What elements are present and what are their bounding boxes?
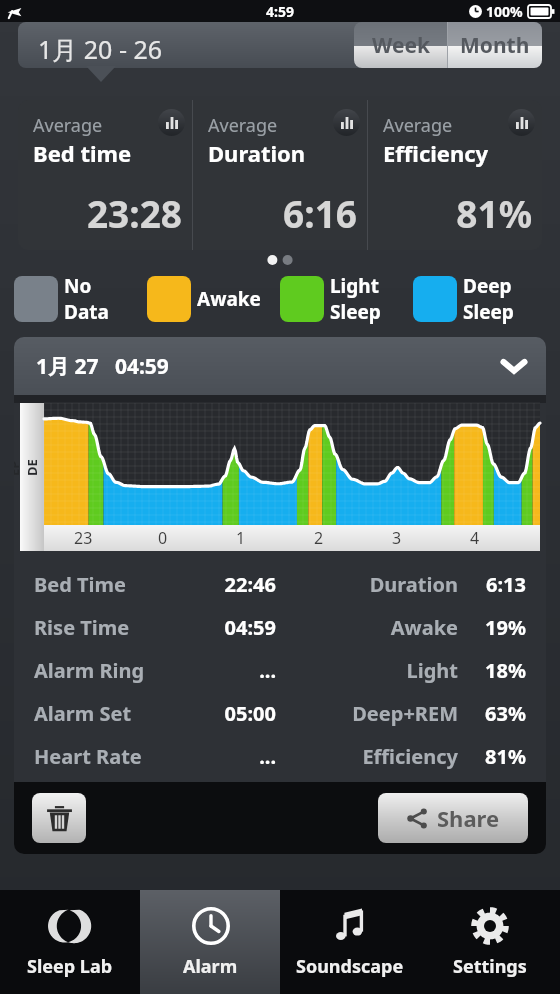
staticText: Data: [64, 299, 109, 325]
button[interactable]: Bed Time: [34, 563, 526, 606]
staticText: No: [64, 273, 92, 299]
staticText: 18%: [468, 657, 526, 684]
staticText: Sleep: [330, 299, 381, 325]
staticText: 05:00: [164, 700, 276, 727]
staticText: Awake: [390, 614, 458, 641]
staticText: 81%: [468, 743, 526, 770]
button[interactable]: Month: [448, 22, 542, 68]
staticText: 2: [314, 527, 324, 549]
button[interactable]: Deep: [413, 270, 546, 328]
staticText: 4: [470, 527, 480, 549]
button[interactable]: Awake: [147, 270, 280, 328]
staticText: Sleep: [463, 299, 514, 325]
button[interactable]: [18, 22, 542, 68]
button[interactable]: Heart Rate: [34, 735, 526, 778]
staticText: SLEEP DEPTH: [14, 452, 77, 476]
staticText: Bed time: [33, 138, 132, 168]
button[interactable]: Light: [280, 270, 413, 328]
button[interactable]: No: [14, 270, 147, 328]
staticText: Settings: [453, 954, 527, 979]
staticText: Deep+REM: [352, 700, 458, 727]
other: Soundscape: [330, 906, 370, 946]
button[interactable]: Alarm: [140, 890, 280, 994]
staticText: Alarm: [183, 954, 238, 979]
staticText: Efficiency: [362, 743, 458, 770]
staticText: Deep: [463, 273, 512, 299]
staticText: 19%: [468, 614, 526, 641]
staticText: 1: [236, 527, 246, 549]
button[interactable]: Show chart: [508, 109, 535, 136]
staticText: Duration: [369, 571, 458, 598]
staticText: 63%: [468, 700, 526, 727]
staticText: Week: [372, 31, 430, 60]
staticText: ...: [164, 743, 276, 770]
staticText: Alarm Ring: [34, 657, 164, 684]
button[interactable]: Alarm Set: [34, 692, 526, 735]
button[interactable]: Average: [368, 100, 542, 250]
button[interactable]: 1月 27 04:59: [14, 337, 546, 395]
staticText: 23: [74, 527, 93, 549]
other: Collapse: [502, 354, 526, 378]
staticText: 23:28: [33, 188, 182, 238]
other: Alarm: [191, 906, 231, 946]
other: Sleep Lab: [50, 906, 90, 946]
staticText: 81%: [383, 188, 532, 238]
staticText: Sleep Lab: [27, 954, 113, 979]
staticText: Month: [460, 31, 530, 60]
staticText: 0: [158, 527, 168, 549]
staticText: 1月 20 - 26: [38, 32, 163, 66]
staticText: 100%: [486, 2, 523, 21]
button[interactable]: Show chart: [333, 109, 360, 136]
button[interactable]: Average: [18, 100, 192, 250]
staticText: Light: [406, 657, 458, 684]
staticText: Bed Time: [34, 571, 164, 598]
staticText: Heart Rate: [34, 743, 164, 770]
staticText: 6:16: [208, 188, 357, 238]
button[interactable]: Soundscape: [280, 890, 420, 994]
button[interactable]: Share: [378, 793, 528, 843]
button[interactable]: Week: [354, 22, 447, 68]
staticText: 04:59: [164, 614, 276, 641]
button[interactable]: Rise Time: [34, 606, 526, 649]
staticText: Share: [437, 803, 500, 833]
button[interactable]: Settings: [420, 890, 560, 994]
staticText: ...: [164, 657, 276, 684]
button[interactable]: Alarm Ring: [34, 649, 526, 692]
staticText: Light: [330, 273, 379, 299]
button[interactable]: Sleep Lab: [0, 890, 140, 994]
staticText: Awake: [197, 286, 261, 312]
other: Settings: [470, 906, 510, 946]
staticText: 22:46: [164, 571, 276, 598]
staticText: Duration: [208, 138, 306, 168]
staticText: 1月 27 04:59: [36, 352, 169, 381]
staticText: 6:13: [468, 571, 526, 598]
staticText: Efficiency: [383, 138, 489, 168]
staticText: 4:59: [266, 2, 294, 21]
staticText: Rise Time: [34, 614, 164, 641]
button[interactable]: Average: [193, 100, 367, 250]
staticText: Alarm Set: [34, 700, 164, 727]
button[interactable]: Delete: [32, 793, 86, 843]
staticText: Average: [33, 113, 103, 138]
staticText: 3: [392, 527, 402, 549]
staticText: Soundscape: [296, 954, 404, 979]
button[interactable]: Show chart: [158, 109, 185, 136]
staticText: Average: [383, 113, 453, 138]
staticText: Average: [208, 113, 278, 138]
